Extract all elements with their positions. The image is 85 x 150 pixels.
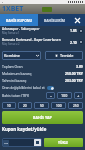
button[interactable]: BAHİS KUPONU xyxy=(0,14,38,26)
staticText: 10 xyxy=(7,104,11,108)
staticText: Temizle xyxy=(60,53,74,58)
staticText: 20 xyxy=(23,104,27,108)
staticText: 1.85 xyxy=(70,28,77,33)
button[interactable]: Close xyxy=(70,14,85,26)
button[interactable]: Oran değişikliklerini kabul et xyxy=(2,84,83,91)
staticText: 1XBET xyxy=(2,4,24,14)
staticText: BAHİS YAP xyxy=(33,115,52,120)
staticText: 250 xyxy=(73,104,79,108)
button[interactable]: YÜKLE xyxy=(44,138,83,147)
staticText: BAHİSLERİM xyxy=(44,18,65,23)
staticText: 3.89 xyxy=(76,64,83,69)
staticText: Toplam Oran xyxy=(2,64,23,69)
button[interactable]: 250 xyxy=(68,102,83,109)
staticText: Tahmini kazanç xyxy=(2,78,27,83)
button[interactable]: Temizle xyxy=(45,51,83,60)
button[interactable]: Adanaspor - Sakaryaspor xyxy=(2,25,83,36)
staticText: 100 xyxy=(56,104,62,108)
button[interactable]: Remove selection xyxy=(79,29,83,33)
staticText: 2.10 xyxy=(70,40,77,45)
staticText: Oran değişikliklerini kabul et xyxy=(2,86,45,90)
staticText: 203.00 TRY xyxy=(65,78,83,83)
button[interactable]: 50 xyxy=(34,102,49,109)
button[interactable]: BAHİSLERİM xyxy=(38,14,70,26)
staticText: BAHİS KUPONU xyxy=(6,18,33,23)
staticText: Kod xyxy=(4,142,9,145)
staticText: Adanaspor - Sakaryaspor xyxy=(2,27,40,31)
button[interactable]: Decrease stake xyxy=(46,92,55,99)
button[interactable]: Promotions xyxy=(42,7,52,12)
staticText: 250.00 TRY xyxy=(65,71,83,76)
button[interactable]: Kod xyxy=(2,138,42,147)
staticText: Borussia Dortmund - Bayer Leverkusen xyxy=(2,38,61,42)
staticText: Kupon kaydet/yükle xyxy=(2,126,47,132)
button[interactable]: BAHİS YAP xyxy=(2,111,83,124)
button[interactable]: 10 xyxy=(2,102,16,109)
staticText: – xyxy=(50,93,52,98)
staticText: 50 xyxy=(40,104,44,108)
button[interactable]: 20 xyxy=(18,102,32,109)
staticText: Maç Sonucu 1 xyxy=(2,31,20,35)
button[interactable]: 100 xyxy=(51,102,66,109)
button[interactable]: Scan QR code xyxy=(34,139,41,146)
staticText: YÜKLE xyxy=(58,141,69,145)
button[interactable]: Borussia Dortmund - Bayer Leverkusen xyxy=(2,36,83,48)
button[interactable]: Kombine xyxy=(2,51,41,60)
staticText: Maksimum kazanç xyxy=(2,71,32,76)
button[interactable]: Increase stake xyxy=(74,92,83,99)
staticText: Kombine xyxy=(4,53,20,58)
staticText: + xyxy=(77,93,80,98)
button[interactable]: Remove selection xyxy=(79,40,83,44)
staticText: Maç Sonucu 2 xyxy=(2,42,20,46)
staticText: Bahis tutarı (TRY) xyxy=(2,93,30,98)
staticText: 100 xyxy=(61,93,68,98)
